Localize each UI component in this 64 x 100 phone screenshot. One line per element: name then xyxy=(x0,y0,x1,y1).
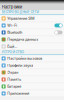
staticText: БЕСПРОВОДНЫЕ СЕТИ xyxy=(2,10,40,14)
staticText: Bluetooth xyxy=(7,30,22,35)
staticText: Батарея xyxy=(7,84,21,89)
button[interactable]: Экран xyxy=(0,69,64,76)
button[interactable]: Батарея xyxy=(0,83,64,90)
staticText: УСТРОЙСТВО xyxy=(2,50,25,54)
staticText: Профили звука xyxy=(7,63,33,68)
button[interactable]: Bluetooth xyxy=(0,29,64,36)
button[interactable]: Управление SIM xyxy=(0,15,64,22)
staticText: Настройки xyxy=(2,5,22,10)
staticText: Ещё... xyxy=(7,44,17,49)
button[interactable]: Передача данных xyxy=(0,36,64,43)
button[interactable]: Настройки xyxy=(0,4,64,10)
button[interactable]: Настройки вызовов xyxy=(0,55,64,62)
staticText: Настройки вызовов xyxy=(7,56,42,61)
button[interactable]: Wi-Fi xyxy=(0,22,64,29)
staticText: Управление SIM xyxy=(7,16,34,21)
staticText: Экран xyxy=(7,70,18,75)
staticText: Передача данных xyxy=(7,37,38,42)
staticText: Приложения xyxy=(7,91,29,96)
staticText: Память xyxy=(7,77,21,82)
button[interactable]: Приложения xyxy=(0,90,64,97)
button[interactable]: Профили звука xyxy=(0,62,64,69)
button[interactable]: Память xyxy=(0,76,64,83)
button[interactable]: Ещё... xyxy=(0,43,64,50)
staticText: Wi-Fi xyxy=(7,23,17,28)
